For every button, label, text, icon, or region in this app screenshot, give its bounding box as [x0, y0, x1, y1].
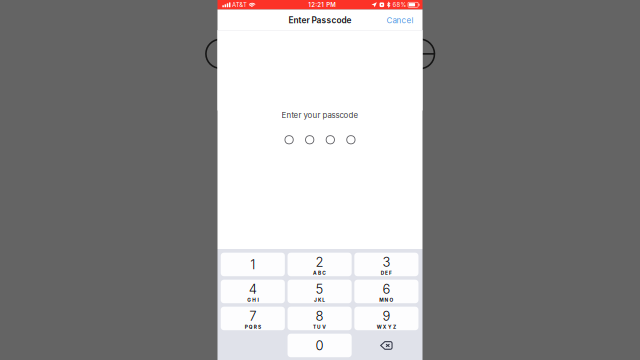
- button[interactable]: 0: [288, 334, 352, 357]
- staticText: 0: [316, 337, 324, 353]
- staticText: 12:21 PM: [308, 1, 336, 8]
- staticText: DEF: [381, 270, 392, 276]
- staticText: 3: [382, 254, 390, 270]
- staticText: TUV: [313, 324, 326, 330]
- button[interactable]: Cancel: [379, 10, 422, 30]
- staticText: AT&T: [232, 1, 247, 8]
- staticText: JKL: [314, 297, 325, 303]
- staticText: 68%: [393, 1, 407, 8]
- staticText: MNO: [379, 297, 393, 303]
- button[interactable]: 9: [354, 307, 418, 330]
- staticText: 1: [250, 256, 255, 272]
- staticText: 8: [316, 308, 324, 324]
- button[interactable]: 6: [354, 280, 418, 303]
- staticText: Enter Passcode: [288, 15, 351, 25]
- staticText: 9: [382, 308, 390, 324]
- staticText: 6: [382, 281, 390, 297]
- staticText: PQRS: [245, 324, 261, 330]
- staticText: Enter your passcode: [281, 110, 358, 120]
- staticText: 2: [316, 254, 324, 270]
- staticText: GHI: [247, 297, 258, 303]
- staticText: ABC: [313, 270, 326, 276]
- staticText: 7: [249, 308, 256, 324]
- button[interactable]: 2: [288, 253, 352, 276]
- button[interactable]: 7: [221, 307, 285, 330]
- staticText: Cancel: [386, 15, 413, 25]
- button[interactable]: 3: [354, 253, 418, 276]
- staticText: WXYZ: [377, 324, 396, 330]
- button[interactable]: 8: [288, 307, 352, 330]
- staticText: 5: [316, 281, 324, 297]
- button[interactable]: 5: [288, 280, 352, 303]
- button[interactable]: 1: [221, 253, 285, 276]
- staticText: 4: [249, 281, 257, 297]
- button[interactable]: 4: [221, 280, 285, 303]
- button[interactable]: Delete: [354, 334, 418, 357]
